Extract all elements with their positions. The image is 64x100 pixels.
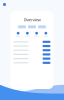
staticText: Overview xyxy=(23,17,40,22)
